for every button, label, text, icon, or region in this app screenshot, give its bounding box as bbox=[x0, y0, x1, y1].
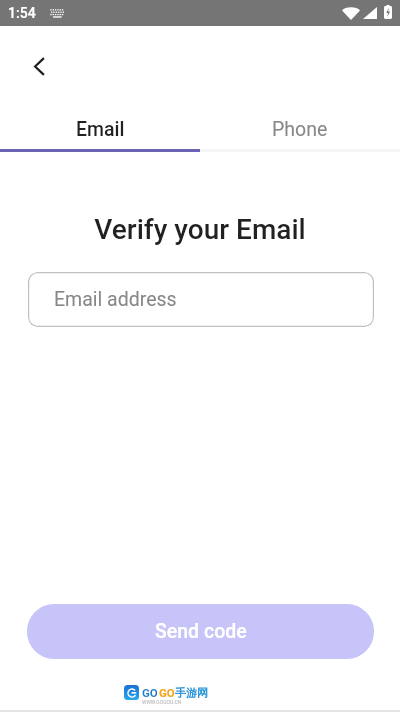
staticText: GO bbox=[142, 686, 158, 699]
staticText: 网 bbox=[197, 686, 208, 700]
staticText: Verify your Email bbox=[0, 213, 400, 246]
staticText: Phone bbox=[272, 118, 328, 141]
staticText: GO bbox=[159, 686, 175, 699]
staticText: WWW.GOGOU.CN bbox=[142, 699, 182, 705]
staticText: Send code bbox=[155, 620, 247, 643]
button[interactable]: Phone bbox=[200, 107, 400, 151]
staticText: 手游 bbox=[175, 686, 197, 700]
button[interactable]: Email bbox=[0, 107, 200, 151]
staticText: Email bbox=[76, 118, 125, 141]
button[interactable]: Email address bbox=[28, 272, 374, 327]
staticText: 1:54 bbox=[8, 5, 36, 21]
button[interactable]: Back bbox=[19, 46, 60, 87]
button[interactable]: Send code bbox=[27, 604, 374, 659]
staticText: Email address bbox=[54, 288, 177, 311]
